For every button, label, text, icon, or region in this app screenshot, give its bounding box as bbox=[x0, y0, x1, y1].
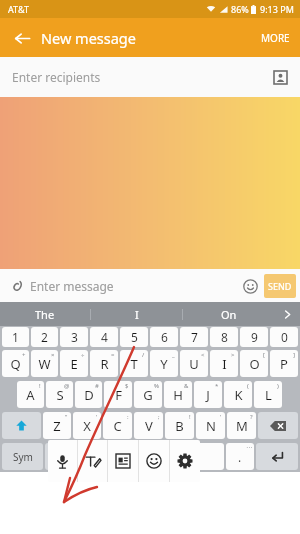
button[interactable]: L bbox=[254, 381, 282, 408]
staticText: H bbox=[173, 386, 183, 404]
button[interactable]: 1 bbox=[2, 327, 29, 347]
button[interactable]: H bbox=[164, 381, 192, 408]
staticText: X bbox=[83, 417, 91, 435]
button[interactable]: V bbox=[134, 412, 163, 439]
button[interactable]: Emoji bbox=[238, 274, 262, 298]
staticText: 9 bbox=[251, 329, 258, 345]
button[interactable]: , bbox=[77, 443, 105, 470]
button[interactable]: C bbox=[103, 412, 132, 439]
staticText: & bbox=[184, 382, 189, 390]
button[interactable]: Back bbox=[4, 20, 40, 56]
button[interactable]: Handwriting bbox=[78, 440, 107, 482]
button[interactable]: F bbox=[104, 381, 132, 408]
staticText: % bbox=[154, 382, 159, 390]
staticText: × bbox=[51, 351, 55, 359]
staticText: M bbox=[236, 417, 248, 435]
button[interactable]: 6 bbox=[150, 327, 178, 347]
button[interactable]: D bbox=[75, 381, 102, 408]
staticText: ( bbox=[247, 382, 249, 390]
button[interactable]: R bbox=[90, 350, 118, 377]
button[interactable]: B bbox=[165, 412, 194, 439]
button[interactable]: E bbox=[60, 350, 88, 377]
button[interactable]: Attach bbox=[4, 273, 30, 299]
button[interactable]: Emoji bbox=[139, 440, 169, 482]
staticText: On bbox=[221, 307, 237, 322]
staticText: ! bbox=[189, 413, 191, 421]
button[interactable]: 7 bbox=[180, 327, 208, 347]
button[interactable]: Voice input bbox=[48, 440, 77, 482]
staticText: = bbox=[111, 351, 115, 359]
staticText: F bbox=[115, 386, 122, 404]
staticText: ' bbox=[96, 413, 98, 421]
button[interactable]: More suggestions bbox=[274, 302, 300, 326]
staticText: : bbox=[127, 413, 129, 421]
button[interactable]: Y bbox=[150, 350, 178, 377]
button[interactable]: 4 bbox=[90, 327, 118, 347]
button[interactable]: N bbox=[196, 412, 225, 439]
button[interactable]: I bbox=[210, 350, 238, 377]
staticText: 86% bbox=[231, 3, 249, 15]
button[interactable]: O bbox=[240, 350, 268, 377]
button[interactable]: 2 bbox=[31, 327, 58, 347]
button[interactable]: On bbox=[183, 302, 274, 326]
button[interactable]: Backspace bbox=[258, 412, 298, 439]
staticText: I bbox=[222, 355, 227, 373]
button[interactable]: SEND bbox=[264, 274, 296, 298]
button[interactable]: P bbox=[270, 350, 298, 377]
button[interactable]: W bbox=[31, 350, 58, 377]
button[interactable]: Sym bbox=[2, 443, 43, 470]
staticText: 0 bbox=[281, 329, 288, 345]
staticText: ] bbox=[293, 351, 295, 359]
button[interactable]: Z bbox=[43, 412, 71, 439]
staticText: . bbox=[238, 449, 242, 465]
button[interactable]: S bbox=[46, 381, 73, 408]
button[interactable]: Add contact bbox=[268, 65, 292, 89]
button[interactable]: U bbox=[180, 350, 208, 377]
button[interactable]: 9 bbox=[240, 327, 268, 347]
button[interactable]: Clipboard bbox=[108, 440, 138, 482]
button[interactable]: G bbox=[134, 381, 162, 408]
staticText: ) bbox=[277, 382, 279, 390]
staticText: [ bbox=[263, 351, 265, 359]
button[interactable] bbox=[2, 412, 41, 439]
staticText: MORE bbox=[261, 31, 290, 45]
staticText: 7 bbox=[191, 329, 198, 345]
button[interactable]: Voice input bbox=[45, 443, 75, 470]
staticText: $ bbox=[125, 382, 129, 390]
button[interactable]: I bbox=[91, 302, 182, 326]
staticText: V bbox=[145, 417, 153, 435]
button[interactable]: X bbox=[73, 412, 101, 439]
button[interactable]: English(US) bbox=[107, 443, 224, 470]
button[interactable]: A bbox=[17, 381, 44, 408]
staticText: " bbox=[65, 413, 68, 421]
staticText: I bbox=[135, 307, 139, 322]
button[interactable]: K bbox=[224, 381, 252, 408]
button[interactable]: Q bbox=[2, 350, 29, 377]
staticText: 2 bbox=[41, 329, 48, 345]
button[interactable]: Enter recipients bbox=[0, 57, 300, 97]
staticText: < bbox=[201, 351, 205, 359]
button[interactable]: T bbox=[120, 350, 148, 377]
staticText: D bbox=[84, 386, 94, 404]
button[interactable]: 5 bbox=[120, 327, 148, 347]
staticText: AT&T bbox=[8, 3, 29, 15]
staticText: The bbox=[35, 307, 55, 322]
button[interactable]: Enter bbox=[256, 443, 298, 470]
staticText: O bbox=[249, 355, 260, 373]
staticText: 3 bbox=[71, 329, 78, 345]
button[interactable]: 0 bbox=[270, 327, 298, 347]
button[interactable]: J bbox=[194, 381, 222, 408]
staticText: U bbox=[189, 355, 199, 373]
button[interactable]: . bbox=[226, 443, 254, 470]
staticText: New message bbox=[41, 28, 136, 48]
button[interactable]: 3 bbox=[60, 327, 88, 347]
staticText: T bbox=[130, 355, 138, 373]
button[interactable]: 8 bbox=[210, 327, 238, 347]
staticText: ⋯ bbox=[246, 443, 252, 450]
button[interactable]: The bbox=[0, 302, 90, 326]
staticText: Enter message bbox=[30, 278, 114, 294]
staticText: A bbox=[26, 386, 35, 404]
button[interactable]: Settings bbox=[170, 440, 200, 482]
button[interactable]: MORE bbox=[251, 23, 300, 53]
button[interactable]: M bbox=[227, 412, 256, 439]
